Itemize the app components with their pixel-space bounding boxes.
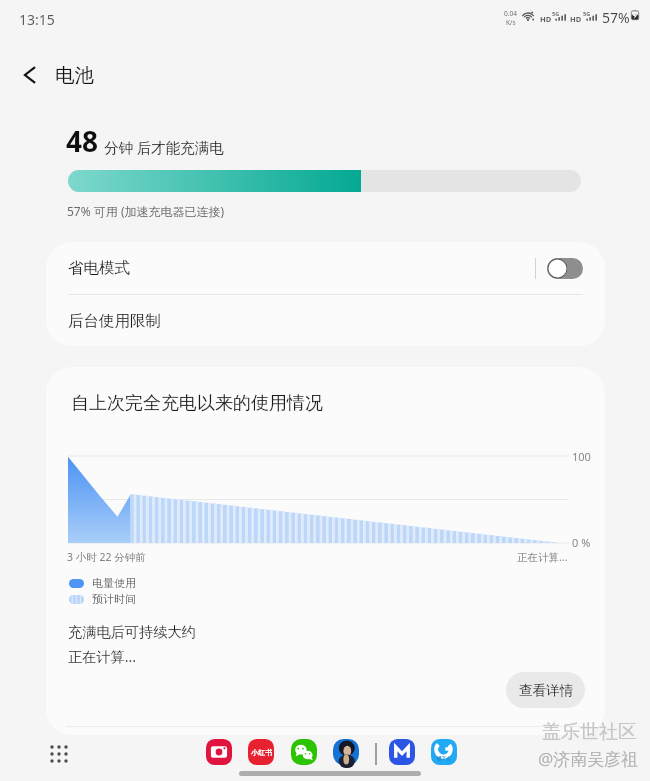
button[interactable]: 省电模式 toggle <box>547 258 583 279</box>
staticText: 预计时间 <box>92 592 136 606</box>
staticText: K/s <box>506 18 516 27</box>
staticText: 盖乐世社区 <box>542 720 637 744</box>
button[interactable]: Apps <box>46 741 72 767</box>
staticText: HD <box>570 14 582 24</box>
button[interactable]: 后台使用限制 <box>46 295 605 346</box>
button[interactable]: Meituan <box>389 739 415 765</box>
button[interactable]: Profile <box>333 739 359 765</box>
staticText: 分钟 后才能充满电 <box>104 137 224 157</box>
staticText: 后台使用限制 <box>68 311 161 331</box>
button[interactable]: Back <box>8 53 52 97</box>
button[interactable]: Ele.me <box>431 739 457 765</box>
staticText: 100 <box>572 449 591 464</box>
staticText: 电量使用 <box>92 576 136 590</box>
staticText: 0 % <box>572 535 591 550</box>
button[interactable]: 查看详情 <box>506 672 585 708</box>
staticText: 充满电后可持续大约 <box>68 623 196 641</box>
button[interactable]: WeChat <box>291 739 317 765</box>
staticText: 饿了么 <box>437 756 451 762</box>
staticText: 自上次完全充电以来的使用情况 <box>71 392 323 415</box>
staticText: HD <box>540 14 552 24</box>
staticText: 57% 可用 (加速充电器已连接) <box>67 203 225 219</box>
button[interactable]: 省电模式 <box>46 242 605 294</box>
staticText: 小红书 <box>251 748 272 757</box>
staticText: 查看详情 <box>519 682 573 699</box>
staticText: 电池 <box>55 63 94 88</box>
staticText: 5G <box>583 10 591 17</box>
button[interactable]: Camera <box>206 739 232 765</box>
staticText: 48 <box>66 122 99 160</box>
staticText: 13:15 <box>19 10 55 29</box>
button[interactable]: Xiaohongshu <box>248 739 274 765</box>
staticText: 省电模式 <box>68 258 130 278</box>
staticText: 5G <box>552 10 560 17</box>
staticText: 正在计算... <box>517 550 568 564</box>
staticText: 正在计算... <box>68 647 137 666</box>
staticText: 0.04 <box>504 9 517 18</box>
staticText: 57% <box>602 8 630 27</box>
staticText: @济南吴彦祖 <box>538 747 639 770</box>
staticText: 3 小时 22 分钟前 <box>67 550 146 564</box>
